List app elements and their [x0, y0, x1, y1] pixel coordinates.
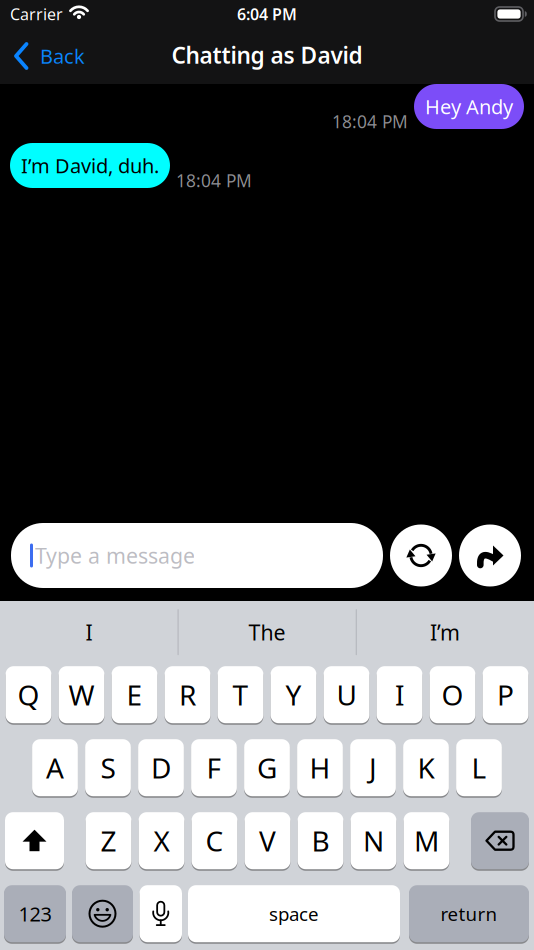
staticText: W — [68, 676, 94, 713]
staticText: D — [151, 749, 171, 786]
button[interactable]: I — [0, 599, 178, 665]
button[interactable]: Send — [459, 524, 521, 586]
staticText: A — [46, 749, 64, 786]
staticText: Back — [40, 43, 85, 69]
button[interactable]: O — [430, 666, 475, 725]
staticText: O — [441, 676, 463, 713]
button[interactable]: V — [245, 812, 290, 871]
staticText: Hey Andy — [425, 93, 513, 120]
staticText: space — [269, 901, 319, 926]
button[interactable]: Type a message — [11, 523, 383, 588]
staticText: J — [369, 749, 377, 786]
staticText: Carrier — [10, 3, 63, 25]
staticText: S — [100, 749, 115, 786]
button[interactable]: I — [377, 666, 422, 725]
button[interactable]: C — [192, 812, 237, 871]
button[interactable]: A — [32, 739, 78, 798]
button[interactable]: E — [112, 666, 157, 725]
button[interactable]: H — [297, 739, 343, 798]
button[interactable]: D — [138, 739, 184, 798]
button[interactable]: Emoji — [72, 885, 133, 944]
staticText: 123 — [18, 900, 51, 927]
button[interactable]: Back — [0, 42, 85, 70]
staticText: H — [309, 749, 330, 786]
staticText: I’m — [430, 618, 460, 646]
button[interactable]: G — [244, 739, 290, 798]
staticText: Q — [17, 676, 39, 713]
staticText: Chatting as David — [171, 40, 362, 70]
staticText: U — [336, 676, 356, 713]
button[interactable]: W — [59, 666, 104, 725]
staticText: X — [153, 822, 169, 859]
staticText: return — [440, 901, 497, 926]
button[interactable]: P — [483, 666, 528, 725]
button[interactable]: B — [298, 812, 343, 871]
button[interactable]: Y — [271, 666, 316, 725]
button[interactable]: N — [351, 812, 396, 871]
button[interactable]: I’m — [356, 599, 534, 665]
button[interactable]: L — [456, 739, 502, 798]
button[interactable]: Numbers — [4, 885, 66, 944]
staticText: Z — [100, 822, 116, 859]
staticText: V — [259, 822, 276, 859]
staticText: E — [126, 676, 142, 713]
button[interactable]: Delete — [471, 812, 529, 871]
staticText: B — [311, 822, 329, 859]
staticText: P — [497, 676, 514, 713]
staticText: N — [363, 822, 384, 859]
staticText: C — [205, 822, 223, 859]
button[interactable]: Z — [86, 812, 131, 871]
staticText: 18:04 PM — [176, 169, 252, 192]
staticText: L — [471, 749, 486, 786]
staticText: I — [85, 618, 92, 646]
button[interactable]: The — [178, 599, 356, 665]
staticText: 6:04 PM — [237, 3, 297, 25]
button[interactable]: K — [403, 739, 449, 798]
button[interactable]: return — [409, 885, 529, 944]
button[interactable]: M — [404, 812, 449, 871]
button[interactable]: Switch sender — [390, 524, 452, 586]
staticText: F — [206, 749, 221, 786]
button[interactable]: F — [191, 739, 237, 798]
staticText: Y — [285, 676, 301, 713]
staticText: I’m David, duh. — [21, 152, 159, 179]
button[interactable]: space — [188, 885, 400, 944]
button[interactable]: T — [218, 666, 263, 725]
staticText: The — [248, 618, 285, 646]
staticText: T — [232, 676, 248, 713]
staticText: M — [414, 822, 439, 859]
button[interactable]: S — [85, 739, 131, 798]
button[interactable]: U — [324, 666, 369, 725]
button[interactable]: Dictation — [139, 885, 182, 944]
staticText: Type a message — [35, 541, 195, 570]
staticText: I — [395, 676, 404, 713]
button[interactable]: R — [165, 666, 210, 725]
button[interactable]: Shift — [5, 812, 64, 871]
button[interactable]: J — [350, 739, 396, 798]
staticText: K — [417, 749, 434, 786]
staticText: G — [257, 749, 277, 786]
staticText: 18:04 PM — [332, 110, 408, 133]
button[interactable]: X — [139, 812, 184, 871]
button[interactable]: Q — [6, 666, 51, 725]
staticText: R — [179, 676, 196, 713]
